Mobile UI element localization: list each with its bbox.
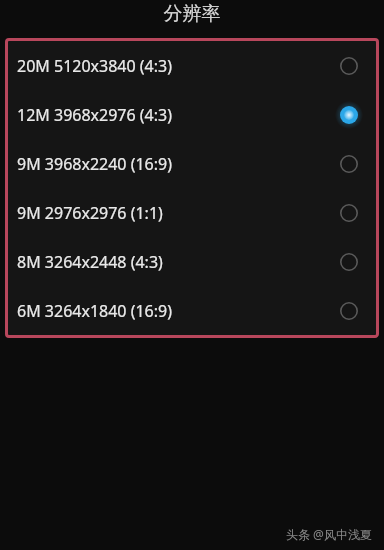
staticText: 6M 3264x1840 (16:9) (17, 300, 173, 322)
staticText: 9M 3968x2240 (16:9) (17, 153, 173, 175)
button[interactable]: 6M 3264x1840 (16:9) (8, 286, 376, 335)
button[interactable]: 12M 3968x2976 (4:3) (8, 90, 376, 139)
button[interactable]: 8M 3264x2448 (4:3) (8, 237, 376, 286)
button[interactable]: 9M 2976x2976 (1:1) (8, 188, 376, 237)
staticText: 12M 3968x2976 (4:3) (17, 104, 173, 126)
staticText: 8M 3264x2448 (4:3) (17, 251, 163, 273)
staticText: 头条 @风中浅夏 (286, 526, 372, 542)
button[interactable]: 20M 5120x3840 (4:3) (8, 41, 376, 90)
button[interactable]: 9M 3968x2240 (16:9) (8, 139, 376, 188)
staticText: 分辨率 (0, 2, 384, 26)
staticText: 20M 5120x3840 (4:3) (17, 55, 173, 77)
staticText: 9M 2976x2976 (1:1) (17, 202, 163, 224)
